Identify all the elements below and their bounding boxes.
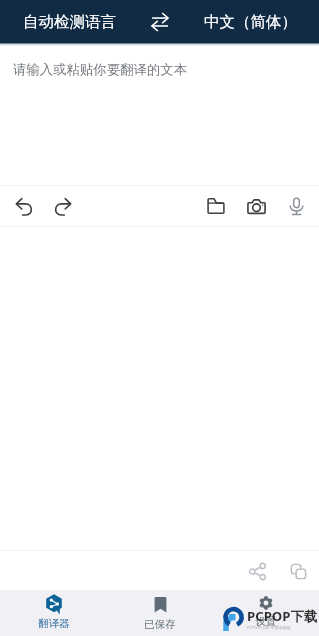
button[interactable]: Camera [238, 188, 274, 224]
button[interactable]: 自动检测语言 [0, 0, 138, 43]
staticText: 设置 [255, 615, 277, 628]
button[interactable]: Documents [198, 188, 234, 224]
button[interactable]: Voice input [278, 188, 314, 224]
button[interactable]: Redo [44, 188, 80, 224]
button[interactable]: Swap languages [138, 0, 181, 43]
staticText: 中文（简体） [204, 12, 297, 32]
staticText: PCPOP下载 [247, 607, 317, 625]
button[interactable]: 中文（简体） [181, 0, 319, 43]
button[interactable]: Undo [6, 188, 42, 224]
button[interactable]: 翻译器 [0, 590, 107, 636]
button[interactable]: 设置 [213, 590, 319, 636]
staticText: 翻译器 [38, 617, 70, 630]
button[interactable]: 已保存 [107, 590, 213, 636]
staticText: PCPOP.COM 中国电脑网 [247, 625, 291, 630]
button[interactable]: Share [239, 553, 275, 589]
button[interactable]: 请输入或粘贴你要翻译的文本 [0, 46, 319, 185]
button[interactable]: Copy [280, 553, 316, 589]
staticText: 已保存 [144, 618, 176, 631]
staticText: 请输入或粘贴你要翻译的文本 [13, 61, 188, 78]
staticText: 自动检测语言 [23, 12, 116, 32]
